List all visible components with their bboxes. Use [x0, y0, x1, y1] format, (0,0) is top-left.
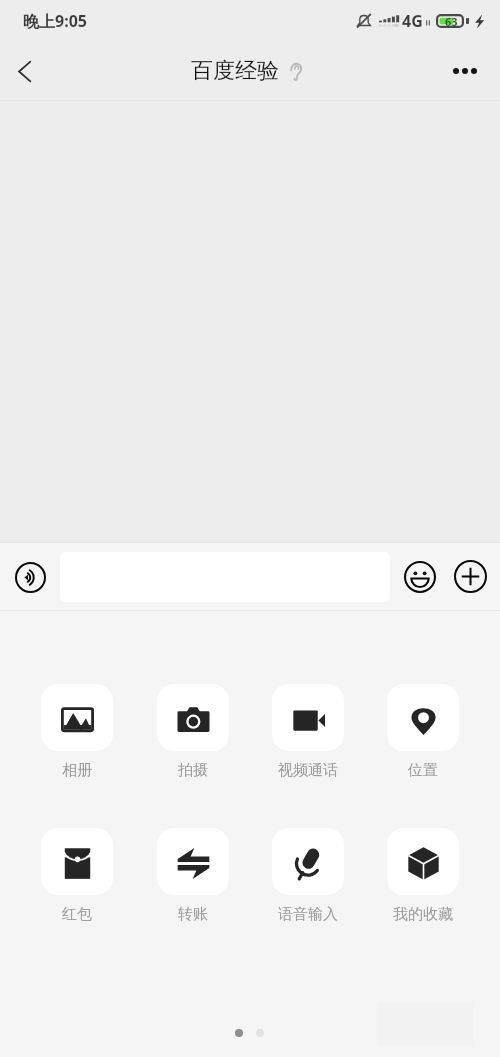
button[interactable]: Voice input	[10, 557, 50, 597]
button[interactable]: 视频通话	[272, 684, 344, 780]
button[interactable]: 红包	[41, 828, 113, 924]
staticText: 晚上9:05	[23, 10, 87, 32]
button[interactable]: Emoji	[400, 557, 440, 597]
staticText: 红包	[62, 905, 92, 924]
button[interactable]: 转账	[157, 828, 229, 924]
button[interactable]: 拍摄	[157, 684, 229, 780]
staticText: 相册	[62, 761, 92, 780]
staticText: 我的收藏	[393, 905, 453, 924]
button[interactable]: More options	[453, 42, 477, 100]
button[interactable]: 语音输入	[272, 828, 344, 924]
button[interactable]: More functions	[450, 556, 491, 597]
staticText: 语音输入	[278, 905, 338, 924]
button[interactable]: Back	[0, 42, 48, 100]
button[interactable]: 我的收藏	[387, 828, 459, 924]
staticText: 拍摄	[178, 761, 208, 780]
staticText: 转账	[178, 905, 208, 924]
staticText: 63	[445, 14, 458, 28]
staticText: 4G	[402, 10, 423, 32]
button[interactable]: 相册	[41, 684, 113, 780]
staticText: 视频通话	[278, 761, 338, 780]
staticText: 百度经验	[191, 57, 279, 85]
staticText: 位置	[408, 761, 438, 780]
button[interactable]: 位置	[387, 684, 459, 780]
